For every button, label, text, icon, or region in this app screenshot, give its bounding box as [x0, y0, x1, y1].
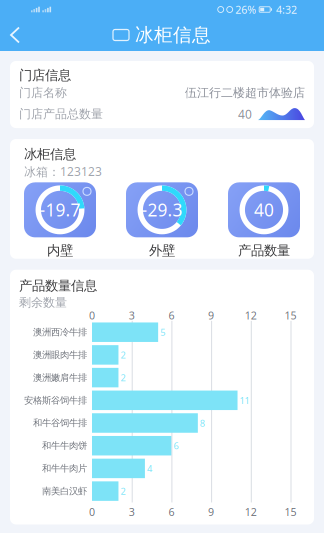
staticText: 门店产品总数量	[19, 107, 103, 121]
staticText: -19.7	[39, 198, 80, 221]
staticText: 6	[168, 308, 174, 322]
staticText: 门店信息	[19, 67, 71, 83]
staticText: 3	[129, 308, 135, 322]
staticText: 产品数量	[238, 242, 290, 259]
staticText: 安格斯谷饲牛排	[24, 395, 87, 406]
staticText: 和牛牛肉片	[42, 463, 87, 474]
staticText: 12	[245, 505, 257, 519]
staticText: 9	[208, 308, 214, 322]
staticText: 15	[284, 308, 296, 322]
staticText: 11	[237, 394, 249, 406]
staticText: 冰柜信息	[135, 23, 211, 46]
staticText: 40	[254, 198, 274, 221]
staticText: 5	[158, 326, 165, 338]
staticText: 26%	[235, 2, 256, 17]
staticText: 门店名称	[19, 85, 67, 100]
staticText: 6	[171, 439, 178, 452]
staticText: 澳洲嫩肩牛排	[33, 372, 87, 383]
staticText: 4:32	[276, 2, 297, 17]
staticText: 12	[245, 308, 257, 322]
staticText: 和牛谷饲牛排	[33, 417, 87, 429]
staticText: 40	[238, 106, 252, 122]
staticText: 伍江行二楼超市体验店	[185, 85, 305, 100]
staticText: 澳洲西冷牛排	[33, 326, 87, 338]
staticText: 产品数量信息	[19, 278, 97, 294]
staticText: 6	[168, 505, 174, 519]
staticText: 内壁	[47, 242, 73, 259]
staticText: 4	[145, 462, 152, 475]
staticText: 和牛牛肉饼	[42, 440, 87, 451]
staticText: 0	[89, 505, 95, 519]
staticText: 3	[129, 505, 135, 519]
staticText: 冰柜信息	[24, 146, 76, 162]
staticText: 冰箱：123123	[24, 163, 102, 179]
staticText: 0	[89, 308, 95, 322]
staticText: 外壁	[149, 242, 175, 259]
staticText: 2	[118, 485, 125, 497]
staticText: 9	[208, 505, 214, 519]
staticText: 2	[118, 349, 125, 361]
staticText: 南美白汉虾	[42, 485, 87, 497]
staticText: 2	[118, 371, 125, 384]
button[interactable]: Back	[0, 20, 33, 50]
staticText: 15	[284, 505, 296, 519]
staticText: 8	[198, 417, 205, 429]
staticText: 剩余数量	[19, 295, 67, 310]
staticText: 澳洲眼肉牛排	[33, 349, 87, 361]
staticText: -29.3	[141, 198, 182, 221]
